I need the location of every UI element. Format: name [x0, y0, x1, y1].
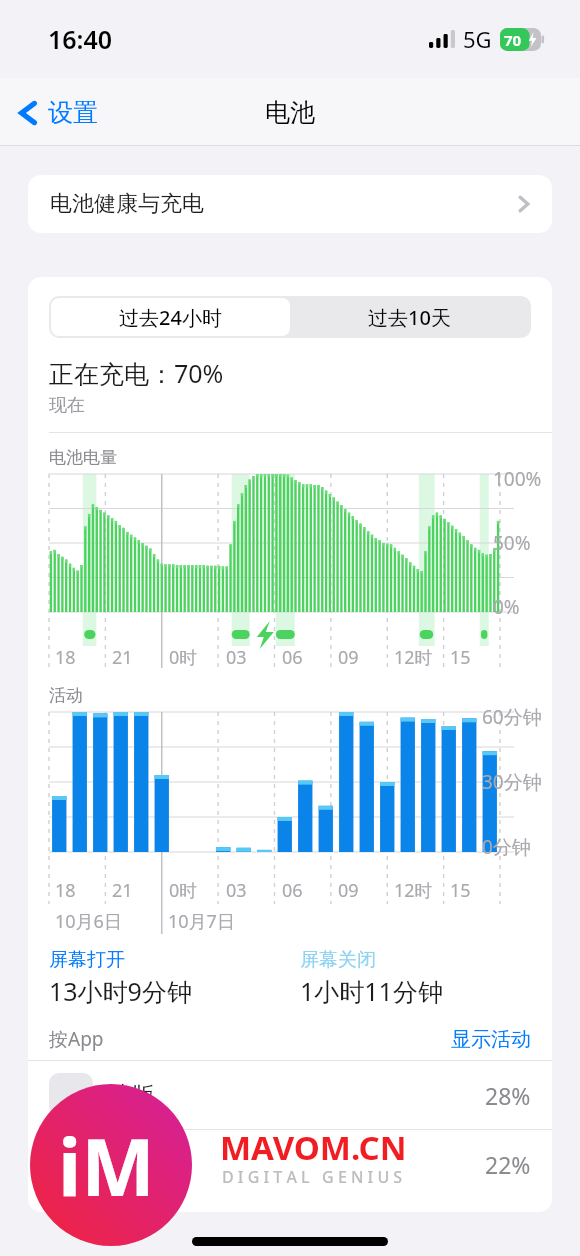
staticText: 5G — [463, 24, 492, 54]
button[interactable]: 速版 — [28, 1061, 552, 1129]
staticText: 12时 — [394, 878, 433, 903]
staticText: 电池电量 — [49, 447, 117, 468]
staticText: 过去24小时 — [119, 304, 222, 331]
staticText: 21 — [112, 878, 133, 903]
staticText: 60分钟 — [482, 704, 542, 730]
staticText: 屏幕打开 — [49, 948, 125, 972]
staticText: 0% — [493, 594, 520, 620]
staticText: 06 — [282, 645, 303, 670]
button[interactable]: 过去24小时 — [51, 298, 290, 336]
staticText: 过去10天 — [368, 304, 451, 331]
staticText: 03 — [226, 878, 247, 903]
button[interactable]: 电池健康与充电 — [28, 175, 552, 233]
staticText: 闲鱼 — [109, 1150, 155, 1179]
staticText: 显示活动 — [451, 1027, 531, 1052]
other: Back — [18, 98, 38, 128]
staticText: 0时 — [169, 645, 198, 670]
staticText: 电池 — [265, 97, 315, 128]
button[interactable]: 过去10天 — [290, 298, 529, 336]
staticText: 活动 — [49, 685, 83, 706]
staticText: 0分钟 — [482, 834, 531, 860]
staticText: 50% — [493, 530, 531, 556]
staticText: 21 — [112, 645, 133, 670]
staticText: 100% — [493, 466, 542, 492]
staticText: 0时 — [169, 878, 198, 903]
staticText: iM — [58, 1113, 155, 1219]
staticText: 16:40 — [48, 22, 113, 56]
staticText: 按App — [49, 1026, 104, 1052]
staticText: 09 — [338, 645, 359, 670]
staticText: 设置 — [48, 97, 98, 128]
staticText: 电池健康与充电 — [50, 190, 204, 218]
staticText: 10月6日 — [55, 909, 122, 934]
staticText: 03 — [226, 645, 247, 670]
staticText: 15 — [450, 645, 471, 670]
staticText: 15 — [450, 878, 471, 903]
button[interactable]: 显示活动 — [451, 1027, 531, 1052]
staticText: 速版 — [109, 1081, 155, 1110]
staticText: 10月7日 — [168, 909, 235, 934]
staticText: 屏幕关闭 — [300, 948, 376, 972]
staticText: 18 — [55, 878, 76, 903]
staticText: MAVOM.CN — [220, 1125, 407, 1170]
staticText: 12时 — [394, 645, 433, 670]
staticText: 正在充电：70% — [49, 356, 224, 390]
button[interactable]: Back — [18, 97, 98, 128]
staticText: 18 — [55, 645, 76, 670]
staticText: D I G I T A L G E N I U S — [222, 1166, 403, 1188]
staticText: 09 — [338, 878, 359, 903]
staticText: 06 — [282, 878, 303, 903]
staticText: 70 — [504, 30, 522, 50]
staticText: 1小时11分钟 — [300, 974, 443, 1008]
staticText: 现在 — [49, 394, 85, 417]
staticText: 28% — [485, 1080, 531, 1111]
staticText: 30分钟 — [482, 769, 542, 795]
button[interactable]: 闲鱼 — [28, 1130, 552, 1198]
staticText: 13小时9分钟 — [49, 974, 192, 1008]
staticText: 22% — [485, 1149, 531, 1180]
